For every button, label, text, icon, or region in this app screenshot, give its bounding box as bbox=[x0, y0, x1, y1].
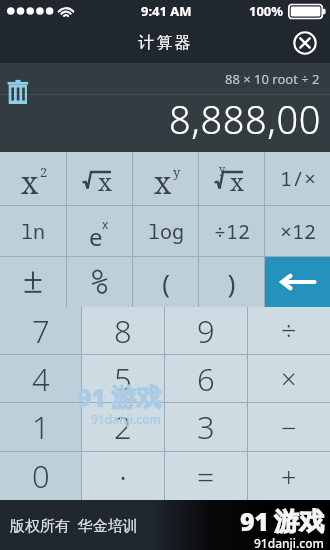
staticText: 91danji.com bbox=[254, 535, 324, 550]
staticText: y bbox=[173, 163, 181, 181]
button[interactable]: log bbox=[133, 206, 198, 256]
staticText: ) bbox=[224, 265, 240, 300]
staticText: 2 bbox=[40, 163, 48, 181]
staticText: ÷ bbox=[281, 312, 297, 349]
staticText: 7 bbox=[32, 310, 50, 352]
button[interactable]: 0 bbox=[0, 452, 81, 500]
button[interactable]: · bbox=[82, 452, 164, 500]
button[interactable]: 8 bbox=[82, 307, 164, 354]
button[interactable]: = bbox=[165, 452, 247, 500]
staticText: = bbox=[197, 456, 215, 497]
staticText: 版权所有 华金培训 bbox=[10, 515, 138, 535]
button[interactable]: 2 bbox=[82, 403, 164, 451]
button[interactable]: 1 bbox=[0, 403, 81, 451]
button[interactable]: 5 bbox=[82, 355, 164, 402]
button[interactable]: x bbox=[0, 152, 66, 205]
staticText: 游戏 bbox=[274, 506, 324, 537]
button[interactable]: ÷ bbox=[248, 307, 330, 354]
staticText: 91 bbox=[77, 380, 106, 414]
button[interactable]: 6 bbox=[165, 355, 247, 402]
staticText: 91 bbox=[240, 504, 269, 538]
button[interactable]: Clear bbox=[6, 75, 38, 107]
staticText: 4 bbox=[32, 358, 50, 400]
staticText: ln bbox=[21, 218, 45, 245]
button[interactable]: 4 bbox=[0, 355, 81, 402]
staticText: x bbox=[230, 165, 244, 198]
staticText: × bbox=[281, 360, 297, 397]
staticText: + bbox=[281, 458, 297, 495]
staticText: 100% bbox=[249, 2, 284, 20]
staticText: x bbox=[98, 165, 112, 198]
button[interactable]: 3 bbox=[165, 403, 247, 451]
button[interactable]: − bbox=[248, 403, 330, 451]
staticText: x bbox=[102, 216, 109, 232]
staticText: ×12 bbox=[280, 218, 316, 245]
button[interactable]: x bbox=[67, 152, 132, 205]
button[interactable]: Backspace bbox=[265, 257, 330, 307]
staticText: 2 bbox=[114, 406, 132, 448]
button[interactable]: x bbox=[199, 152, 264, 205]
staticText: 1/× bbox=[280, 165, 316, 192]
button[interactable]: x bbox=[133, 152, 198, 205]
button[interactable] bbox=[0, 257, 66, 307]
staticText: 91danji.com bbox=[91, 411, 161, 427]
staticText: 3 bbox=[197, 406, 215, 448]
button[interactable]: ln bbox=[0, 206, 66, 256]
button[interactable]: ( bbox=[133, 257, 198, 307]
staticText: 9:41 AM bbox=[141, 2, 192, 20]
button[interactable]: + bbox=[248, 452, 330, 500]
staticText: 88 × 10 root ÷ 2 bbox=[225, 70, 320, 88]
staticText: 计算器 bbox=[138, 33, 194, 53]
staticText: ÷12 bbox=[214, 218, 250, 245]
staticText: e bbox=[89, 220, 103, 253]
staticText: 8,888,00 bbox=[169, 93, 322, 145]
button[interactable]: 1/× bbox=[265, 152, 330, 205]
button[interactable]: ×12 bbox=[265, 206, 330, 256]
staticText: 0 bbox=[32, 455, 50, 497]
staticText: 8 bbox=[114, 310, 132, 352]
staticText: 6 bbox=[197, 358, 215, 400]
button[interactable]: Close bbox=[291, 29, 319, 57]
staticText: 1 bbox=[32, 406, 50, 448]
staticText: · bbox=[119, 454, 128, 499]
button[interactable]: ) bbox=[199, 257, 264, 307]
staticText: x bbox=[154, 162, 172, 202]
staticText: − bbox=[281, 409, 297, 446]
button[interactable] bbox=[67, 257, 132, 307]
button[interactable]: ÷12 bbox=[199, 206, 264, 256]
staticText: 游戏 bbox=[111, 382, 161, 413]
button[interactable]: e bbox=[67, 206, 132, 256]
staticText: x bbox=[21, 162, 39, 202]
staticText: ( bbox=[158, 265, 174, 300]
staticText: 9 bbox=[197, 310, 215, 352]
staticText: 5 bbox=[114, 358, 132, 400]
staticText: log bbox=[148, 218, 184, 245]
button[interactable]: 7 bbox=[0, 307, 81, 354]
staticText: y bbox=[219, 161, 226, 176]
button[interactable]: × bbox=[248, 355, 330, 402]
button[interactable]: 9 bbox=[165, 307, 247, 354]
